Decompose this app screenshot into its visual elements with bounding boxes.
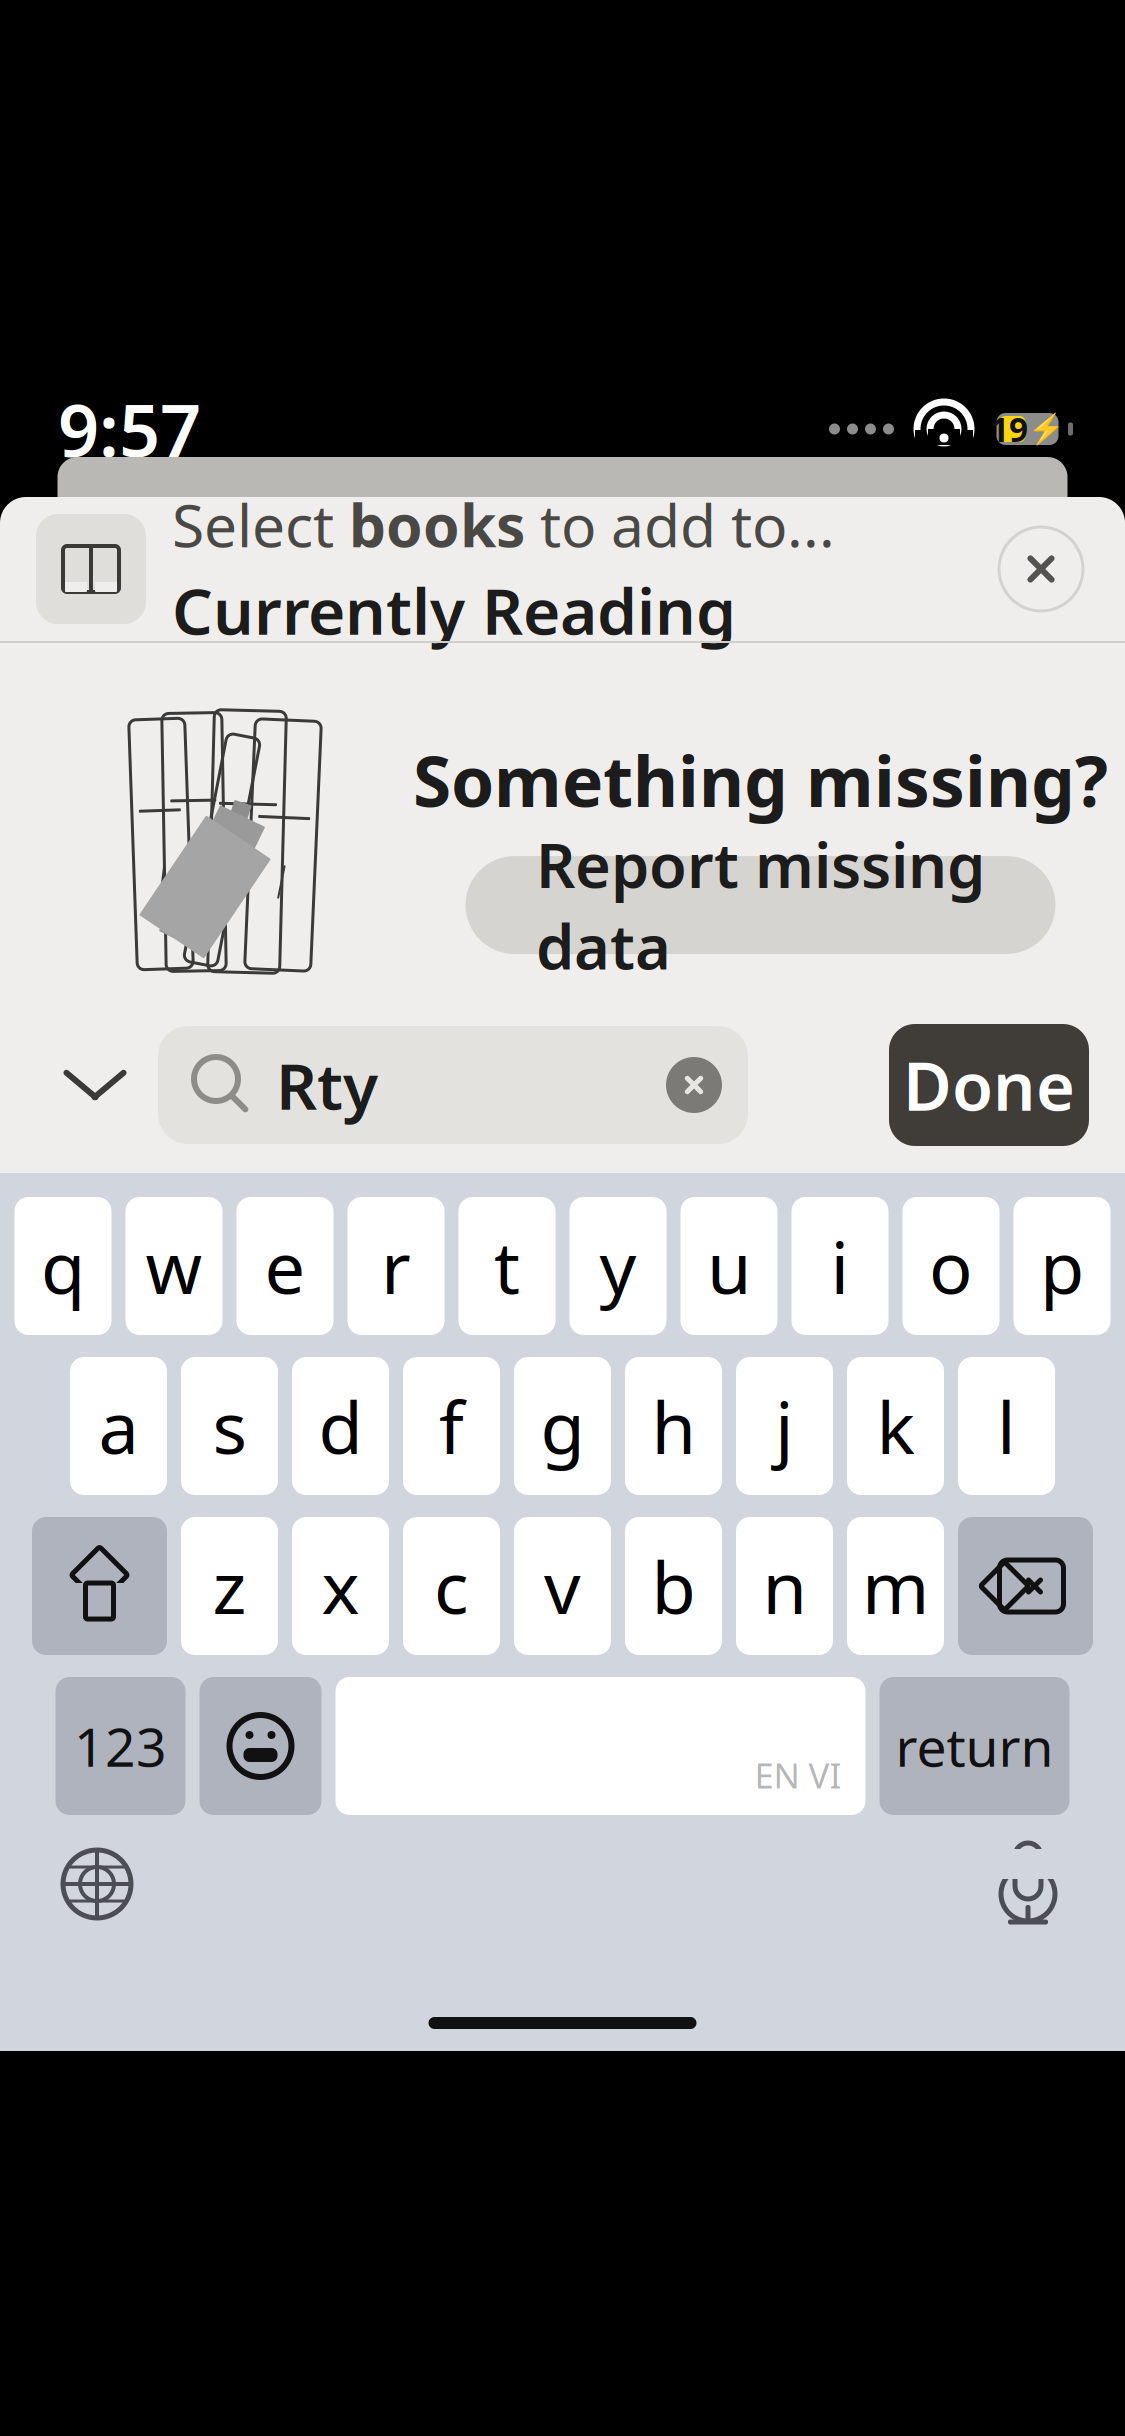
button[interactable]: d (292, 1357, 389, 1495)
button[interactable]: Done (889, 1024, 1089, 1146)
button[interactable]: q (14, 1197, 111, 1335)
staticText: 9:57 (58, 381, 201, 477)
staticText: e (264, 1218, 305, 1314)
button[interactable]: r (347, 1197, 444, 1335)
button[interactable]: Close (993, 521, 1089, 617)
button[interactable]: w (125, 1197, 222, 1335)
staticText: v (544, 1538, 581, 1634)
staticText: Done (903, 1041, 1075, 1129)
staticText: m (862, 1538, 929, 1634)
button[interactable]: s (181, 1357, 278, 1495)
staticText: 123 (74, 1711, 167, 1781)
staticText: books (349, 486, 525, 563)
staticText: Report missing data (536, 824, 985, 986)
button[interactable]: f (403, 1357, 500, 1495)
staticText: Select (172, 486, 349, 563)
staticText: d (318, 1378, 362, 1474)
button[interactable]: Emoji (199, 1677, 321, 1815)
button[interactable]: Delete (958, 1517, 1093, 1655)
staticText: i (830, 1218, 849, 1314)
staticText: f (439, 1378, 464, 1474)
staticText: p (1040, 1218, 1084, 1314)
button[interactable]: j (736, 1357, 833, 1495)
staticText: b (651, 1538, 695, 1634)
button[interactable]: g (514, 1357, 611, 1495)
staticText: 19 (990, 407, 1028, 451)
button[interactable]: n (736, 1517, 833, 1655)
staticText: return (895, 1711, 1053, 1781)
staticText: s (212, 1378, 246, 1474)
button[interactable]: Space (335, 1677, 865, 1815)
staticText: r (381, 1218, 411, 1314)
button[interactable]: y (569, 1197, 666, 1335)
button[interactable]: m (847, 1517, 944, 1655)
staticText: h (651, 1378, 695, 1474)
staticText: to add to... (525, 486, 835, 563)
button[interactable]: e (236, 1197, 333, 1335)
staticText: q (41, 1218, 85, 1314)
staticText: k (876, 1378, 914, 1474)
staticText: c (434, 1538, 469, 1634)
staticText: Something missing? (413, 734, 1108, 826)
button[interactable]: a (70, 1357, 167, 1495)
button[interactable]: Shift (32, 1517, 167, 1655)
staticText: Rty (276, 1042, 378, 1127)
button[interactable]: Collapse (50, 1040, 140, 1130)
staticText: x (321, 1538, 359, 1634)
button[interactable]: c (403, 1517, 500, 1655)
staticText: a (98, 1378, 138, 1474)
staticText: n (762, 1538, 806, 1634)
button[interactable]: t (458, 1197, 555, 1335)
button[interactable]: v (514, 1517, 611, 1655)
staticText: w (145, 1218, 202, 1314)
staticText: z (212, 1538, 246, 1634)
button[interactable]: 123 (55, 1677, 185, 1815)
staticText: t (494, 1218, 520, 1314)
button[interactable]: Next keyboard (42, 1829, 152, 1939)
staticText: g (540, 1378, 584, 1474)
staticText: j (775, 1378, 794, 1474)
button[interactable]: i (791, 1197, 888, 1335)
staticText: ⚡ (1028, 412, 1065, 446)
staticText: o (929, 1218, 973, 1314)
staticText: EN VI (754, 1752, 841, 1798)
button[interactable]: x (292, 1517, 389, 1655)
button[interactable]: Dictate (973, 1829, 1083, 1939)
staticText: y (599, 1218, 636, 1314)
staticText: Currently Reading (172, 567, 736, 652)
staticText: l (997, 1378, 1016, 1474)
button[interactable]: h (625, 1357, 722, 1495)
button[interactable]: z (181, 1517, 278, 1655)
button[interactable]: return (879, 1677, 1069, 1815)
button[interactable]: l (958, 1357, 1055, 1495)
staticText: u (707, 1218, 751, 1314)
button[interactable]: b (625, 1517, 722, 1655)
button[interactable]: k (847, 1357, 944, 1495)
button[interactable]: u (680, 1197, 777, 1335)
button[interactable]: o (902, 1197, 999, 1335)
button[interactable]: Report missing data (465, 856, 1055, 954)
button[interactable]: Rty (158, 1026, 748, 1144)
button[interactable]: p (1013, 1197, 1110, 1335)
